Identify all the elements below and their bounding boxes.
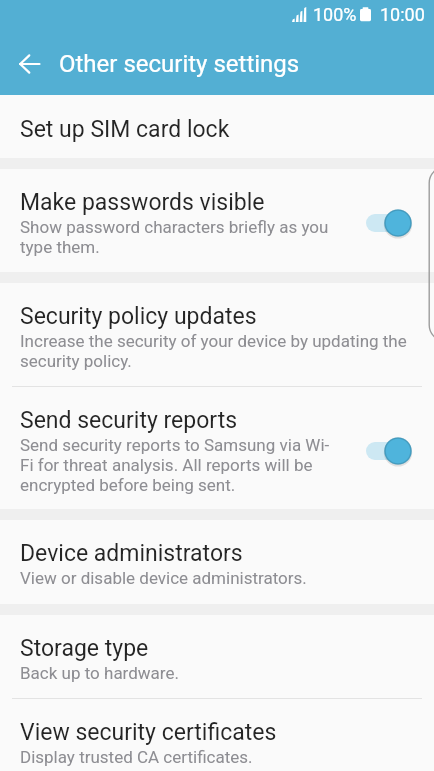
staticText: Security policy updates [20, 303, 257, 330]
button[interactable]: Security policy updates [0, 283, 434, 386]
staticText: Device administrators [20, 540, 243, 567]
button[interactable]: Device administrators [0, 520, 434, 604]
button[interactable]: Send security reports [0, 387, 434, 509]
button[interactable]: Back [0, 36, 59, 92]
staticText: Show password characters briefly as you … [20, 217, 338, 257]
staticText: View or disable device administrators. [20, 568, 307, 588]
staticText: Send security reports [20, 407, 238, 434]
staticText: View security certificates [20, 719, 277, 746]
button[interactable]: Storage type [0, 615, 434, 698]
staticText: 10:00 [380, 4, 425, 25]
staticText: Set up SIM card lock [20, 116, 230, 143]
button[interactable]: View security certificates [0, 699, 434, 771]
staticText: Increase the security of your device by … [20, 331, 410, 371]
staticText: Send security reports to Samsung via Wi-… [20, 435, 338, 495]
staticText: Storage type [20, 635, 149, 662]
staticText: Make passwords visible [20, 189, 265, 216]
staticText: Display trusted CA certificates. [20, 747, 253, 767]
button[interactable]: Set up SIM card lock [0, 95, 434, 158]
staticText: Back up to hardware. [20, 663, 179, 683]
staticText: 100% [313, 4, 357, 25]
button[interactable]: Make passwords visible [0, 169, 434, 272]
staticText: Other security settings [59, 50, 300, 78]
